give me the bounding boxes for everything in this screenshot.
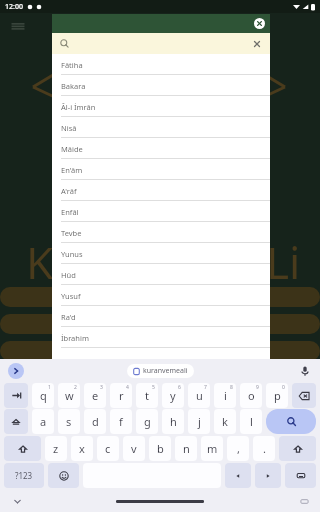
- button[interactable]: u: [188, 383, 210, 408]
- button[interactable]: Shift: [4, 436, 41, 461]
- staticText: Mâide: [61, 144, 83, 154]
- staticText: l: [250, 414, 253, 429]
- button[interactable]: A'râf: [52, 180, 270, 201]
- button[interactable]: [0, 341, 72, 361]
- button[interactable]: Menu: [9, 17, 27, 35]
- button[interactable]: En'âm: [52, 159, 270, 180]
- button[interactable]: Shift: [279, 436, 316, 461]
- button[interactable]: [248, 287, 320, 307]
- button[interactable]: r: [110, 383, 132, 408]
- staticText: Tevbe: [61, 228, 82, 238]
- button[interactable]: Enfâl: [52, 201, 270, 222]
- button[interactable]: o: [240, 383, 262, 408]
- button[interactable]: [248, 341, 320, 361]
- staticText: k: [222, 414, 228, 429]
- button[interactable]: Hûd: [52, 264, 270, 285]
- staticText: n: [183, 441, 190, 456]
- button[interactable]: x: [71, 436, 93, 461]
- staticText: ?123: [15, 470, 33, 481]
- button[interactable]: Fâtiha: [52, 54, 270, 75]
- staticText: y: [170, 388, 176, 403]
- button[interactable]: d: [84, 409, 106, 434]
- button[interactable]: Emoji: [48, 463, 79, 488]
- button[interactable]: Move cursor right: [255, 463, 281, 488]
- button[interactable]: Tab: [4, 383, 28, 408]
- button[interactable]: i: [214, 383, 236, 408]
- staticText: Enfâl: [61, 207, 79, 217]
- button[interactable]: j: [188, 409, 210, 434]
- staticText: c: [105, 441, 111, 456]
- staticText: u: [196, 388, 203, 403]
- staticText: Yunus: [61, 249, 83, 259]
- staticText: r: [119, 388, 124, 403]
- button[interactable]: g: [136, 409, 158, 434]
- button[interactable]: Backspace: [292, 383, 316, 408]
- button[interactable]: .: [253, 436, 275, 461]
- staticText: d: [92, 414, 99, 429]
- button[interactable]: Yusuf: [52, 285, 270, 306]
- staticText: ,: [237, 441, 240, 456]
- button[interactable]: Ra'd: [52, 306, 270, 327]
- button[interactable]: Nisâ: [52, 117, 270, 138]
- staticText: Bakara: [61, 81, 86, 91]
- staticText: .: [263, 441, 266, 456]
- staticText: v: [131, 441, 137, 456]
- button[interactable]: n: [175, 436, 197, 461]
- staticText: Nisâ: [61, 123, 77, 133]
- button[interactable]: Clear: [60, 33, 262, 54]
- staticText: h: [170, 414, 177, 429]
- button[interactable]: ,: [227, 436, 249, 461]
- button[interactable]: e: [84, 383, 106, 408]
- button[interactable]: y: [162, 383, 184, 408]
- button[interactable]: Âl-i İmrân: [52, 96, 270, 117]
- staticText: s: [66, 414, 72, 429]
- button[interactable]: Close: [254, 18, 265, 29]
- button[interactable]: h: [162, 409, 184, 434]
- staticText: İbrahim: [61, 333, 89, 343]
- button[interactable]: s: [58, 409, 80, 434]
- button[interactable]: Mâide: [52, 138, 270, 159]
- button[interactable]: a: [32, 409, 54, 434]
- button[interactable]: [248, 314, 320, 334]
- button[interactable]: t: [136, 383, 158, 408]
- staticText: 0: [282, 384, 285, 391]
- button[interactable]: l: [240, 409, 262, 434]
- button[interactable]: m: [201, 436, 223, 461]
- button[interactable]: f: [110, 409, 132, 434]
- staticText: K: [26, 232, 54, 292]
- button[interactable]: w: [58, 383, 80, 408]
- staticText: x: [79, 441, 85, 456]
- button[interactable]: c: [97, 436, 119, 461]
- button[interactable]: Expand: [8, 363, 24, 379]
- button[interactable]: k: [214, 409, 236, 434]
- button[interactable]: Clear: [252, 39, 262, 49]
- staticText: b: [157, 441, 164, 456]
- button[interactable]: q: [32, 383, 54, 408]
- button[interactable]: Switch keyboard: [285, 463, 316, 488]
- button[interactable]: Search: [266, 409, 316, 434]
- button[interactable]: Tevbe: [52, 222, 270, 243]
- button[interactable]: Shift: [4, 409, 28, 434]
- button[interactable]: z: [45, 436, 67, 461]
- button[interactable]: b: [149, 436, 171, 461]
- staticText: Âl-i İmrân: [61, 102, 96, 112]
- staticText: Ra'd: [61, 312, 76, 322]
- staticText: 8: [230, 384, 233, 391]
- button[interactable]: ?123: [4, 463, 44, 488]
- staticText: A'râf: [61, 186, 77, 196]
- staticText: o: [248, 388, 255, 403]
- staticText: 4: [126, 384, 129, 391]
- staticText: t: [145, 388, 149, 403]
- button[interactable]: Bakara: [52, 75, 270, 96]
- button[interactable]: Voice input: [299, 365, 311, 377]
- button[interactable]: kuranvemeali: [127, 364, 194, 378]
- button[interactable]: v: [123, 436, 145, 461]
- staticText: Fâtiha: [61, 60, 83, 70]
- button[interactable]: [0, 314, 72, 334]
- button[interactable]: İbrahim: [52, 327, 270, 348]
- button[interactable]: p: [266, 383, 288, 408]
- button[interactable]: Move cursor left: [225, 463, 251, 488]
- button[interactable]: [0, 287, 72, 307]
- button[interactable]: Yunus: [52, 243, 270, 264]
